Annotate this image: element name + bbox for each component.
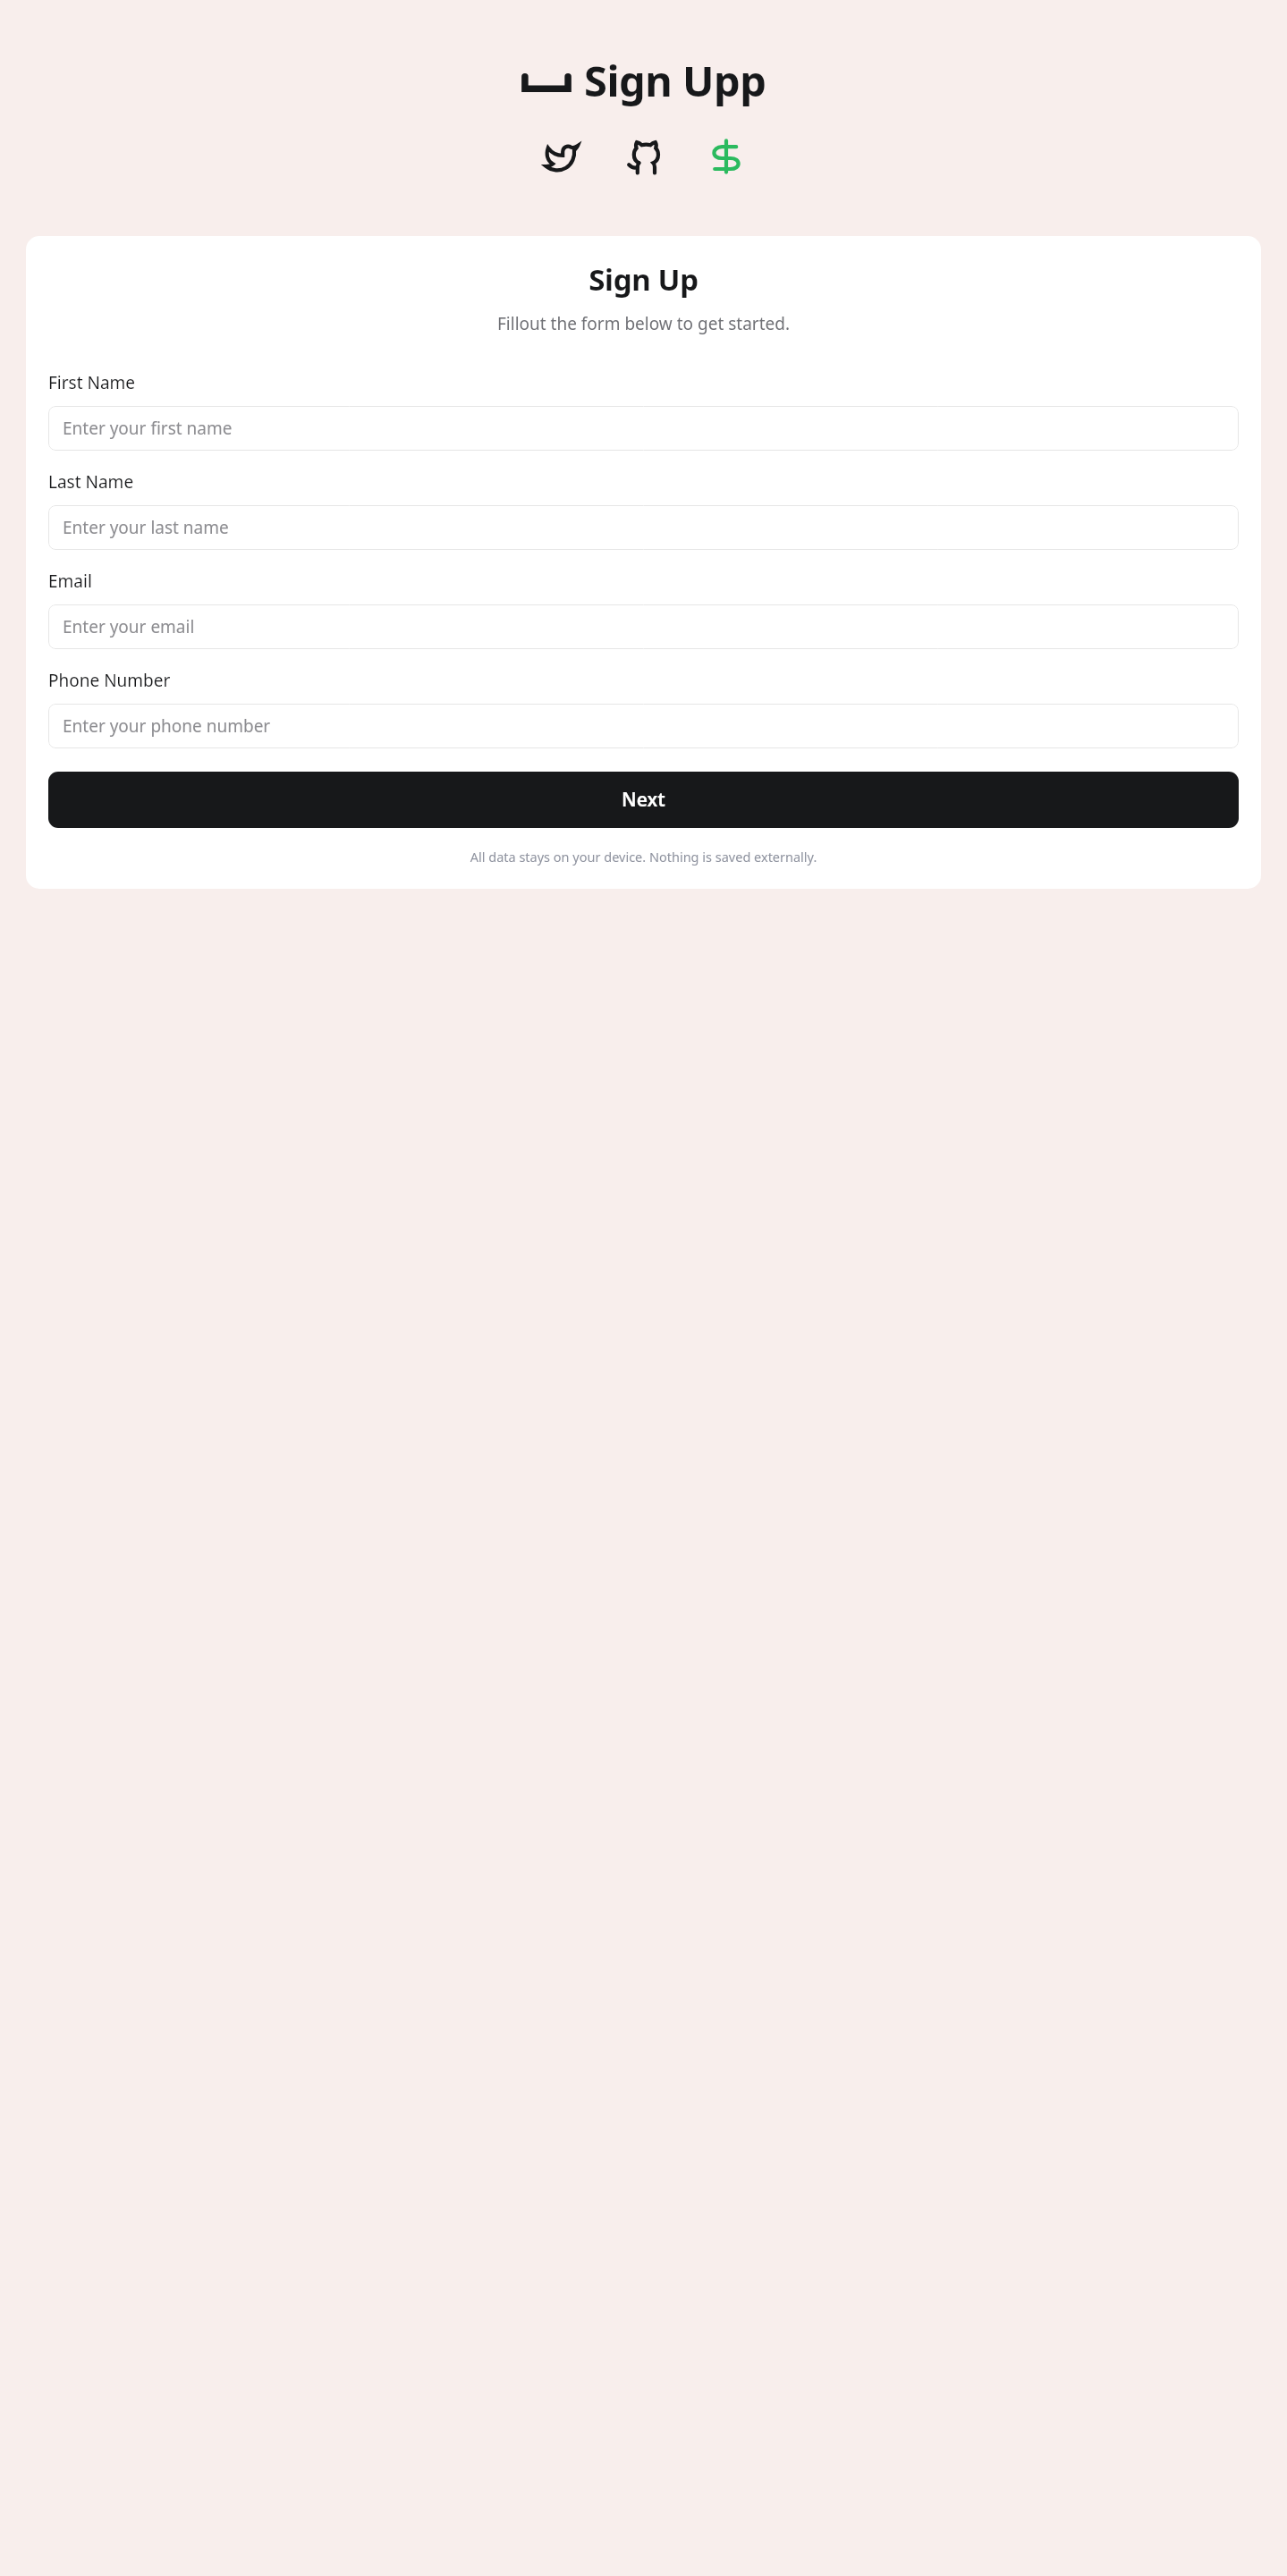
button[interactable]: Enter your phone number (48, 704, 1239, 748)
staticText: Last Name (48, 470, 134, 494)
button[interactable]: Logo (521, 52, 766, 109)
other: Logo (521, 62, 572, 99)
button[interactable]: Enter your last name (48, 505, 1239, 550)
staticText: Sign Upp (584, 52, 766, 109)
staticText: Next (622, 787, 665, 813)
staticText: Enter your first name (63, 417, 233, 440)
staticText: Email (48, 570, 92, 593)
staticText: Sign Up (48, 259, 1239, 300)
staticText: Enter your phone number (63, 714, 271, 738)
button[interactable]: Payments (702, 132, 750, 181)
staticText: Enter your email (63, 615, 195, 638)
staticText: Fillout the form below to get started. (48, 312, 1239, 335)
button[interactable]: Next (48, 772, 1239, 828)
staticText: All data stays on your device. Nothing i… (48, 848, 1239, 866)
button[interactable]: Twitter (538, 132, 586, 181)
staticText: Phone Number (48, 669, 171, 692)
button[interactable]: Enter your email (48, 604, 1239, 649)
staticText: Enter your last name (63, 516, 229, 539)
staticText: First Name (48, 371, 136, 394)
button[interactable]: Enter your first name (48, 406, 1239, 451)
button[interactable]: GitHub (620, 132, 668, 181)
